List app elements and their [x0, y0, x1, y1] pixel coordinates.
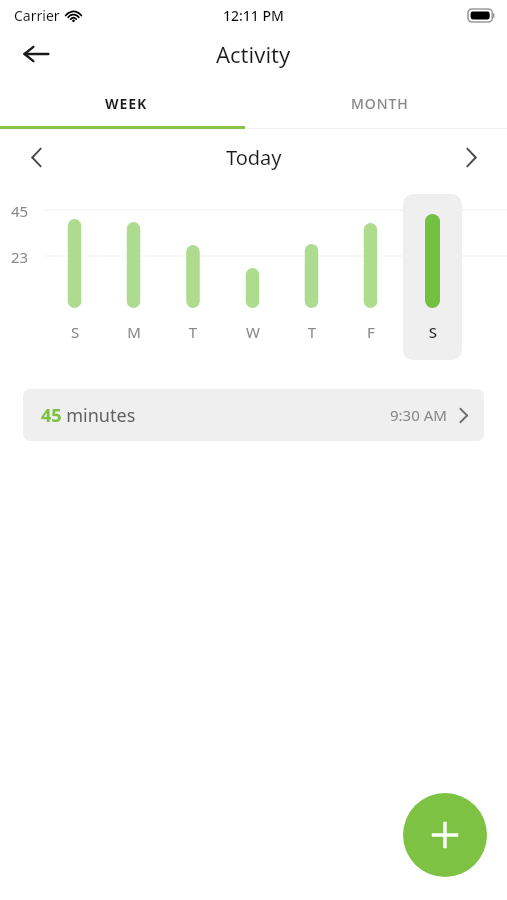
- button[interactable]: 45 minutes: [23, 389, 484, 441]
- button[interactable]: [403, 194, 462, 360]
- button[interactable]: MONTH: [253, 78, 507, 129]
- button[interactable]: Previous week: [14, 135, 58, 179]
- staticText: W: [241, 322, 265, 342]
- staticText: Activity: [216, 39, 291, 69]
- staticText: Today: [226, 144, 282, 171]
- staticText: Carrier: [14, 6, 60, 25]
- button[interactable]: Next week: [449, 135, 493, 179]
- staticText: M: [122, 322, 146, 342]
- staticText: S: [63, 322, 87, 342]
- staticText: S: [421, 322, 445, 342]
- staticText: 45: [11, 201, 29, 221]
- staticText: 9:30 AM: [390, 405, 447, 425]
- button[interactable]: Back: [14, 32, 58, 76]
- staticText: T: [300, 322, 324, 342]
- staticText: F: [359, 322, 383, 342]
- staticText: WEEK: [105, 94, 148, 113]
- button[interactable]: WEEK: [0, 78, 253, 129]
- staticText: T: [181, 322, 205, 342]
- button[interactable]: Add activity: [403, 793, 487, 877]
- staticText: 45 minutes: [41, 403, 136, 428]
- staticText: 23: [11, 247, 29, 267]
- staticText: MONTH: [351, 94, 409, 113]
- staticText: 12:11 PM: [223, 6, 284, 25]
